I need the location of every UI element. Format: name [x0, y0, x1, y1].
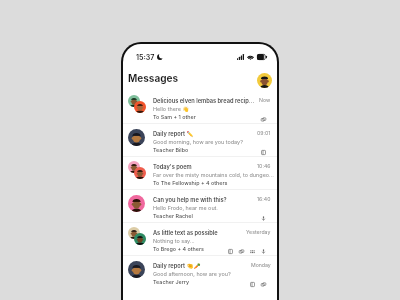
staticText: Now [259, 97, 271, 103]
staticText: Good afternoon, how are you? [153, 271, 231, 278]
staticText: To Sam + 1 other [153, 114, 196, 121]
staticText: Hello Frodo, hear me out. [153, 205, 218, 212]
button[interactable]: Profile [257, 73, 272, 88]
staticText: Teacher Rachel [153, 213, 193, 220]
staticText: 09:01 [257, 130, 271, 136]
staticText: Good morning, how are you today? [153, 139, 243, 146]
staticText: Daily report 🤏🥕 [153, 262, 257, 269]
staticText: Daily report ✏️ [153, 130, 257, 137]
staticText: Messages [128, 72, 179, 84]
staticText: 15:37 [136, 53, 155, 61]
staticText: Far over the misty mountains cold, to du… [153, 172, 274, 179]
button[interactable]: As little text as possible [123, 224, 277, 257]
staticText: To Brego + 4 others [153, 246, 205, 253]
staticText: 16:40 [257, 196, 271, 202]
button[interactable]: Today's poem [123, 158, 277, 191]
staticText: Delicious elven lembas bread recip... [153, 97, 257, 104]
staticText: Yesterday [246, 229, 271, 235]
staticText: Today's poem [153, 163, 257, 170]
staticText: As little text as possible [153, 229, 257, 236]
button[interactable]: Daily report ✏️ [123, 125, 277, 158]
staticText: Teacher Bilbo [153, 147, 189, 154]
button[interactable]: Daily report 🤏🥕 [123, 257, 277, 290]
button[interactable]: Can you help me with this? [123, 191, 277, 224]
staticText: Can you help me with this? [153, 196, 257, 203]
staticText: To The Fellowship + 4 others [153, 180, 228, 187]
button[interactable]: Delicious elven lembas bread recip... [123, 92, 277, 125]
staticText: 10:46 [257, 163, 271, 169]
staticText: Nothing to say... [153, 238, 195, 245]
staticText: Teacher Jerry [153, 279, 190, 286]
staticText: Monday [251, 262, 271, 268]
staticText: Hello there 👋 [153, 106, 190, 113]
